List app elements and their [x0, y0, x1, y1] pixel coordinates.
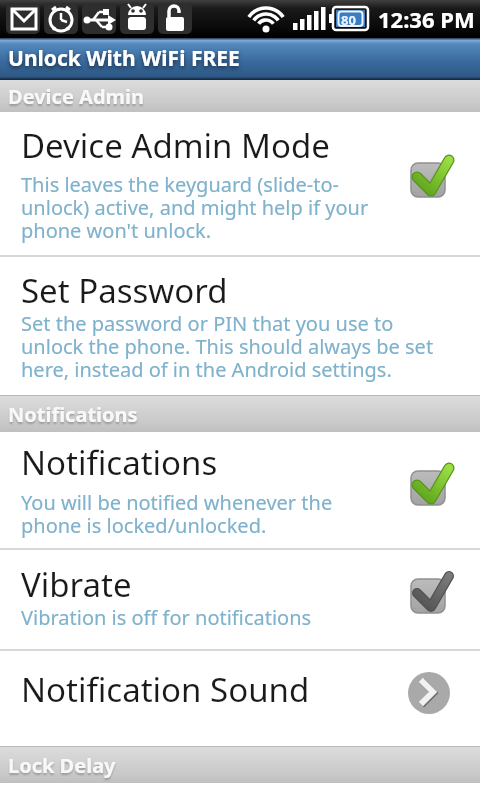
staticText: 12:36 PM	[378, 4, 475, 34]
button[interactable]: Vibrate	[0, 550, 480, 649]
staticText: Device Admin	[8, 83, 144, 110]
staticText: Notification Sound	[21, 667, 310, 712]
staticText: Unlock With WiFi FREE	[8, 44, 240, 73]
button[interactable]: Notifications	[0, 432, 480, 548]
staticText: Set Password	[21, 268, 228, 313]
staticText: Vibration is off for notifications	[21, 604, 312, 631]
staticText: Lock Delay	[8, 752, 116, 779]
staticText: 80	[341, 11, 356, 29]
staticText: Set the password or PIN that you use to …	[21, 310, 434, 383]
staticText: This leaves the keyguard (slide-to- unlo…	[21, 171, 369, 244]
staticText: Notifications	[21, 440, 218, 485]
button[interactable]: Set Password	[0, 257, 480, 395]
staticText: You will be notified whenever the phone …	[21, 489, 333, 539]
button[interactable]: Device Admin Mode	[0, 112, 480, 255]
staticText: Device Admin Mode	[21, 123, 330, 168]
staticText: Vibrate	[21, 562, 132, 607]
button[interactable]: Notification Sound	[0, 651, 480, 746]
staticText: Notifications	[8, 401, 138, 428]
